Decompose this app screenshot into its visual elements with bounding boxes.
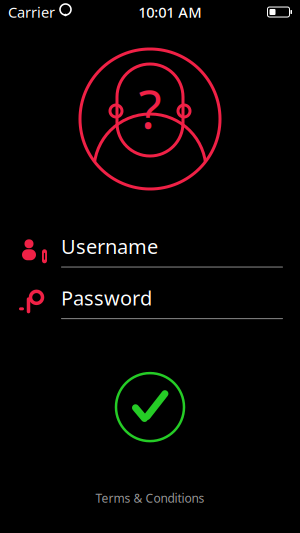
- staticText: Username: [61, 233, 158, 260]
- staticText: Carrier: [8, 2, 55, 22]
- button[interactable]: Username: [0, 233, 300, 268]
- staticText: Password: [61, 285, 152, 311]
- button[interactable]: Terms & Conditions: [85, 485, 214, 511]
- staticText: ?: [138, 73, 161, 143]
- button[interactable]: Password: [0, 285, 300, 319]
- button[interactable]: Sign in: [114, 371, 186, 443]
- staticText: Terms & Conditions: [95, 490, 204, 506]
- staticText: 10:01 AM: [138, 2, 201, 22]
